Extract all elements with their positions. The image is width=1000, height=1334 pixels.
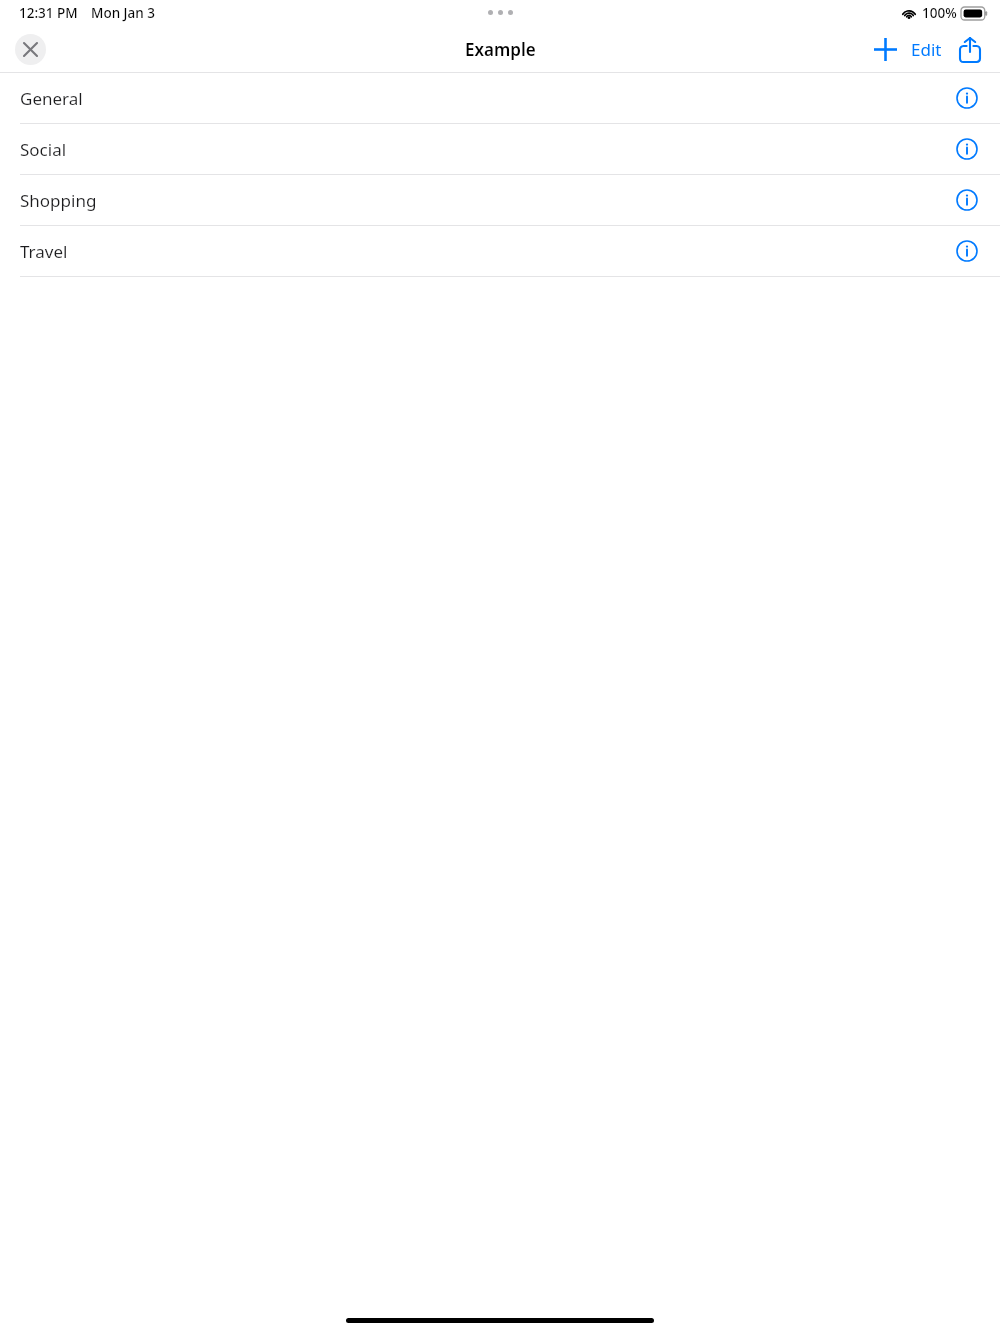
- button[interactable]: More info about Shopping: [950, 183, 984, 217]
- button[interactable]: Add: [866, 30, 904, 68]
- staticText: Edit: [911, 38, 942, 61]
- button[interactable]: Close: [15, 34, 46, 65]
- staticText: Shopping: [20, 189, 97, 212]
- button[interactable]: Social: [0, 124, 1000, 175]
- staticText: Travel: [20, 240, 68, 263]
- button[interactable]: More info about Social: [950, 132, 984, 166]
- button[interactable]: Travel: [0, 226, 1000, 277]
- button[interactable]: Share: [953, 32, 987, 66]
- button[interactable]: More info about Travel: [950, 234, 984, 268]
- staticText: Social: [20, 138, 67, 161]
- staticText: Mon Jan 3: [91, 4, 155, 22]
- staticText: General: [20, 87, 83, 110]
- staticText: 12:31 PM: [19, 4, 78, 22]
- staticText: Example: [465, 38, 536, 61]
- button[interactable]: More info about General: [950, 81, 984, 115]
- staticText: 100%: [922, 4, 957, 22]
- button[interactable]: Shopping: [0, 175, 1000, 226]
- button[interactable]: General: [0, 73, 1000, 124]
- button[interactable]: Edit: [908, 32, 945, 67]
